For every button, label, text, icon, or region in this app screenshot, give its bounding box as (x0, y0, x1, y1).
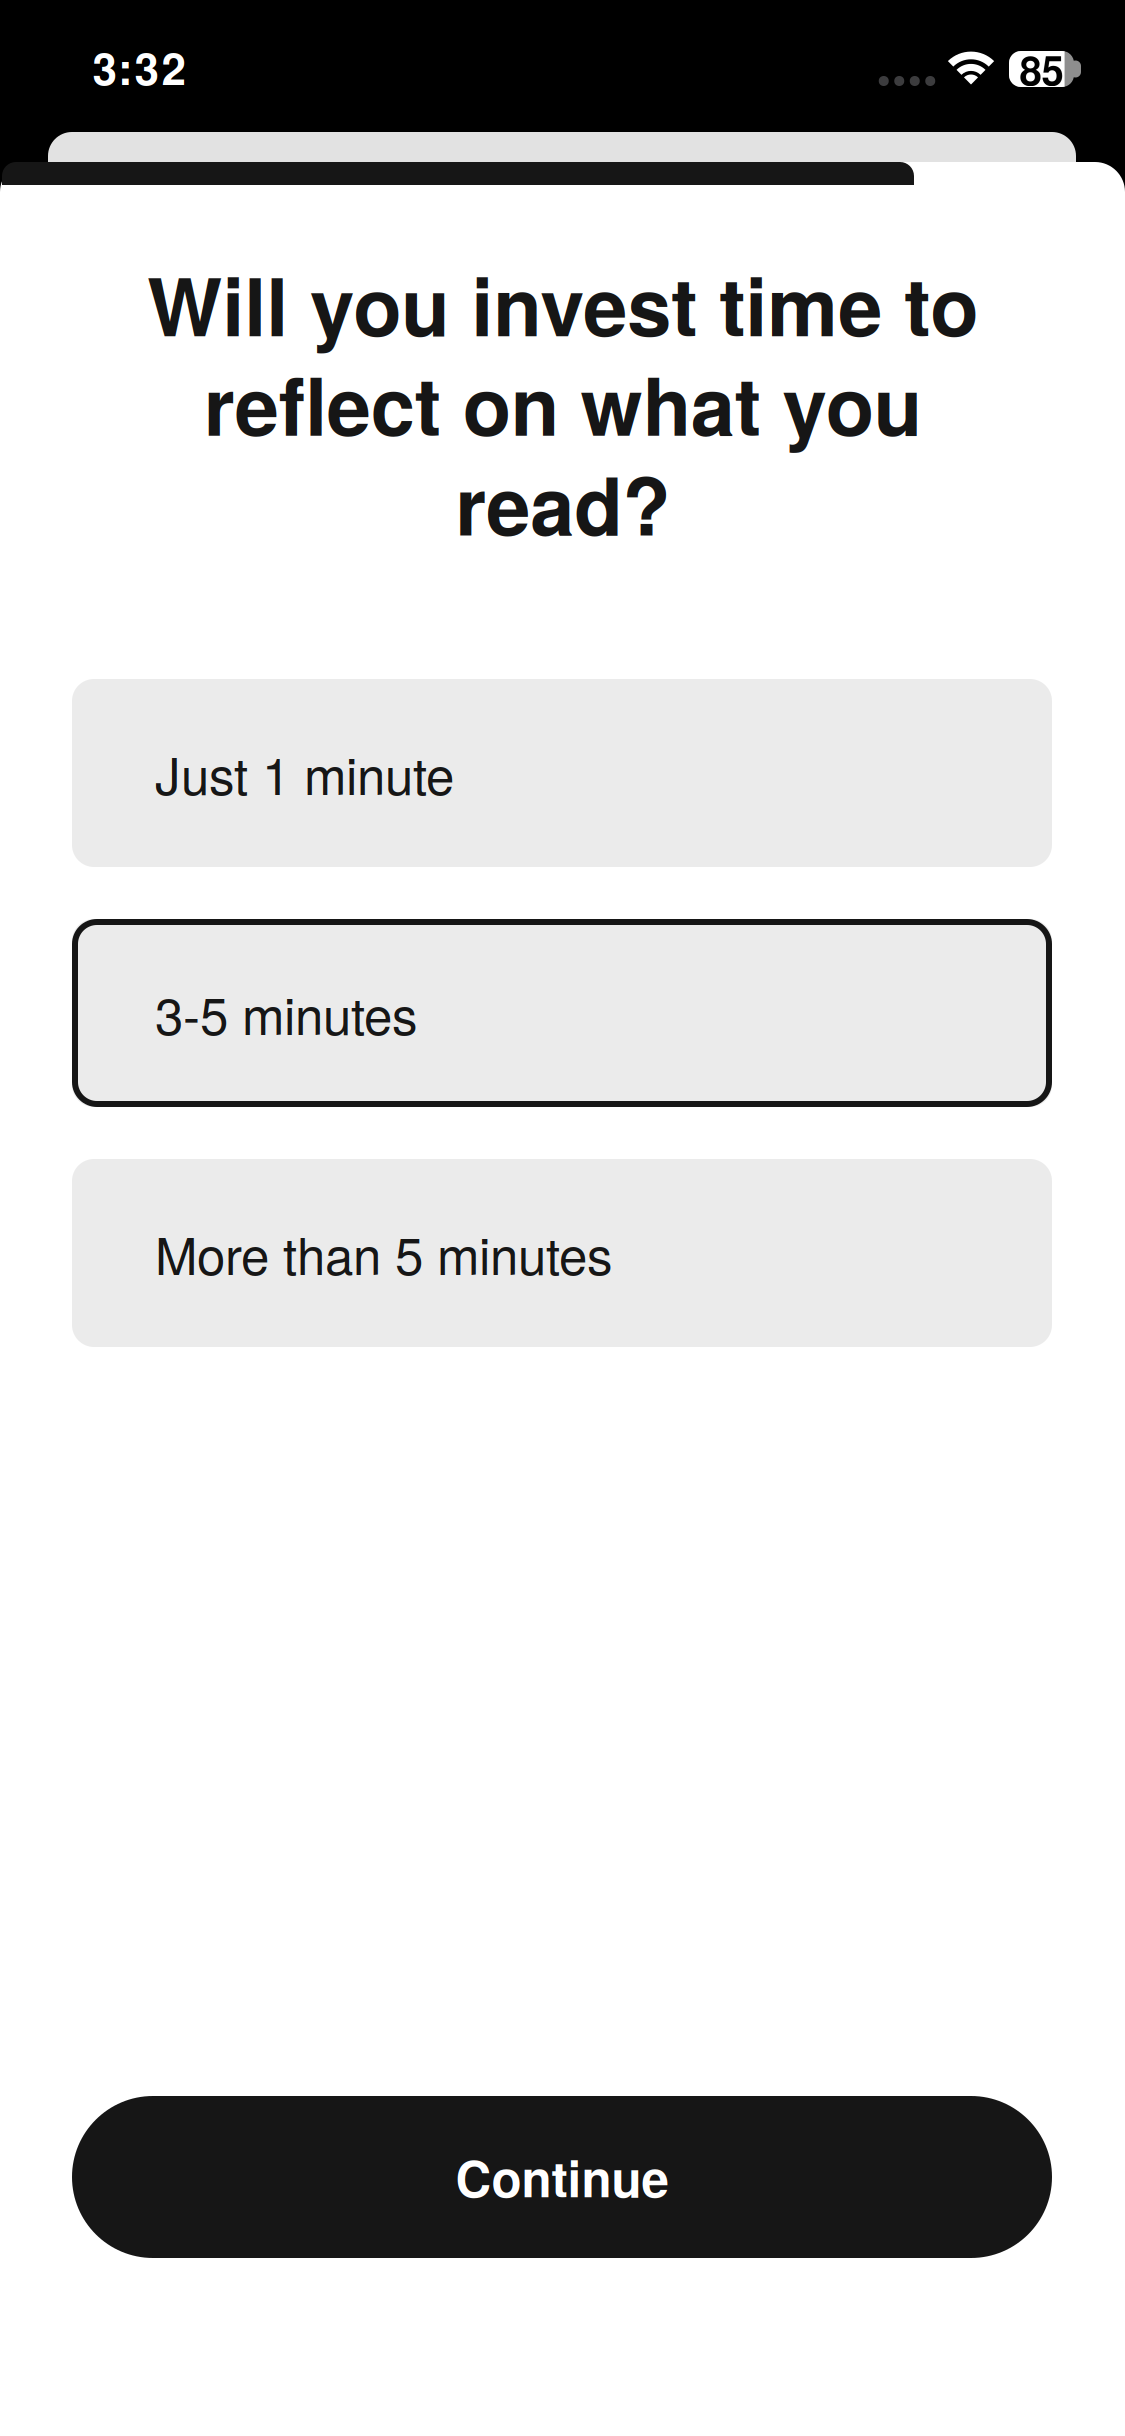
button[interactable]: Continue (72, 2096, 1052, 2258)
staticText: Continue (455, 2142, 668, 2212)
staticText: : (118, 35, 133, 98)
staticText: 2 (161, 35, 185, 98)
staticText: More than 5 minutes (155, 1216, 613, 1289)
staticText: 3-5 minutes (155, 976, 418, 1049)
button[interactable]: Just 1 minute (72, 679, 1052, 867)
staticText: Just 1 minute (155, 736, 454, 809)
staticText: 3 (134, 35, 158, 98)
staticText: 85 (1019, 40, 1063, 98)
button[interactable]: More than 5 minutes (72, 1159, 1052, 1347)
staticText: 3 (92, 35, 116, 98)
staticText: Will you invest time to reflect on what … (147, 247, 978, 560)
button[interactable]: 3-5 minutes (72, 919, 1052, 1107)
